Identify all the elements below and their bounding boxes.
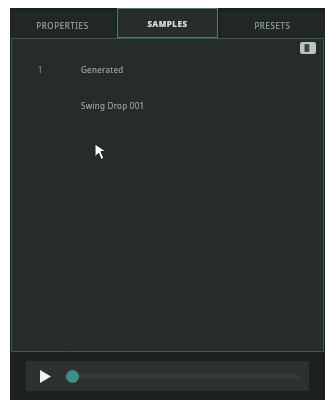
staticText: PROPERTIES <box>36 20 89 31</box>
button[interactable]: Swing Drop 001 <box>11 94 324 116</box>
button[interactable]: SAMPLES <box>117 8 218 38</box>
button[interactable]: PRESETS <box>220 12 325 38</box>
staticText: SAMPLES <box>147 18 188 29</box>
staticText: PRESETS <box>254 20 291 31</box>
button[interactable]: Play <box>26 361 64 391</box>
staticText: Swing Drop 001 <box>81 100 145 111</box>
staticText: Generated <box>81 64 124 75</box>
button[interactable]: PROPERTIES <box>10 12 115 38</box>
button[interactable]: Save sample <box>300 42 316 54</box>
staticText: 1 <box>38 64 43 75</box>
button[interactable]: Playback position <box>64 361 299 391</box>
button[interactable]: 1 <box>11 58 324 80</box>
